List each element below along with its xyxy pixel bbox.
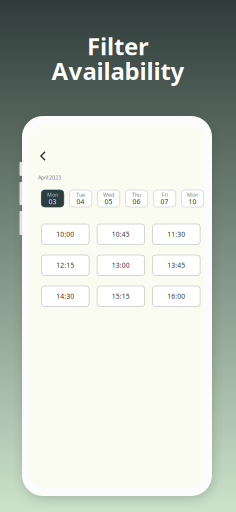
- button[interactable]: 15:15: [97, 286, 145, 306]
- staticText: Availability: [51, 55, 184, 87]
- staticText: 14:30: [56, 292, 74, 301]
- button[interactable]: 16:00: [153, 286, 200, 306]
- button[interactable]: Fri: [153, 190, 176, 207]
- button[interactable]: 14:30: [42, 286, 89, 306]
- staticText: 13:00: [112, 261, 130, 270]
- staticText: 06: [133, 197, 141, 206]
- button[interactable]: 10:45: [97, 224, 145, 244]
- staticText: Thu: [132, 191, 141, 198]
- staticText: Filter: [87, 30, 149, 62]
- staticText: 12:15: [56, 261, 74, 270]
- button[interactable]: 11:30: [153, 224, 200, 244]
- staticText: 03: [48, 197, 56, 206]
- staticText: 10:00: [56, 230, 74, 239]
- staticText: 04: [76, 197, 84, 206]
- staticText: 16:00: [167, 292, 185, 301]
- staticText: Mon: [47, 191, 58, 198]
- staticText: 13:45: [167, 261, 185, 270]
- staticText: 07: [161, 197, 169, 206]
- staticText: April 2023: [38, 174, 61, 181]
- button[interactable]: 13:45: [153, 255, 200, 275]
- button[interactable]: 12:15: [42, 255, 89, 275]
- staticText: 10:45: [112, 230, 130, 239]
- staticText: 11:30: [167, 230, 185, 239]
- button[interactable]: Thu: [125, 190, 148, 207]
- button[interactable]: Tue: [69, 190, 92, 207]
- button[interactable]: Wed: [97, 190, 120, 207]
- staticText: Mon: [187, 191, 198, 198]
- staticText: 05: [104, 197, 112, 206]
- button[interactable]: 13:00: [97, 255, 145, 275]
- button[interactable]: Back: [35, 148, 51, 164]
- staticText: 10: [189, 197, 197, 206]
- button[interactable]: 10:00: [42, 224, 89, 244]
- button[interactable]: Mon: [181, 190, 204, 207]
- staticText: Tue: [76, 191, 85, 198]
- staticText: 15:15: [112, 292, 130, 301]
- button[interactable]: Mon: [41, 190, 64, 207]
- staticText: Fri: [162, 191, 168, 198]
- staticText: Wed: [103, 191, 114, 198]
